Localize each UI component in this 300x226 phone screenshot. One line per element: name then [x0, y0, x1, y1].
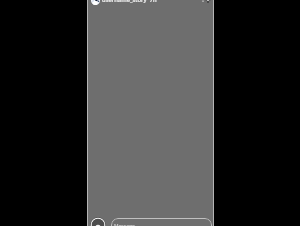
- staticText: username_story 7h: [102, 0, 157, 4]
- button[interactable]: Your profile: [90, 217, 106, 226]
- button[interactable]: More options: [200, 0, 206, 3]
- staticText: Message...: [114, 223, 139, 226]
- button[interactable]: Message...: [111, 218, 212, 226]
- button[interactable]: Close: [204, 0, 212, 4]
- button[interactable]: Profile photo: [91, 0, 100, 5]
